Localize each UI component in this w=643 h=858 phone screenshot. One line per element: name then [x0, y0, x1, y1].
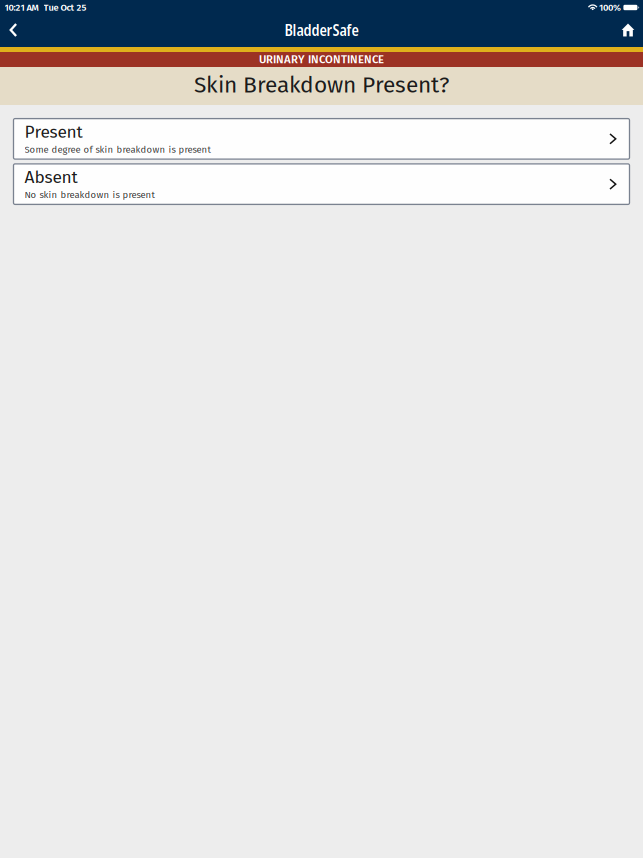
- staticText: Skin Breakdown Present?: [194, 71, 449, 99]
- button[interactable]: Back: [0, 15, 27, 45]
- staticText: 10:21 AM: [4, 2, 38, 13]
- button[interactable]: Absent: [13, 164, 629, 204]
- staticText: URINARY INCONTINENCE: [259, 53, 384, 66]
- staticText: Tue Oct 25: [43, 2, 86, 13]
- button[interactable]: Home: [614, 15, 642, 45]
- staticText: Some degree of skin breakdown is present: [24, 144, 210, 155]
- staticText: BladderSafe: [284, 20, 358, 40]
- button[interactable]: Present: [13, 119, 629, 159]
- staticText: No skin breakdown is present: [24, 189, 154, 200]
- staticText: 100%: [599, 2, 621, 13]
- staticText: Absent: [24, 167, 77, 188]
- staticText: Present: [24, 121, 82, 142]
